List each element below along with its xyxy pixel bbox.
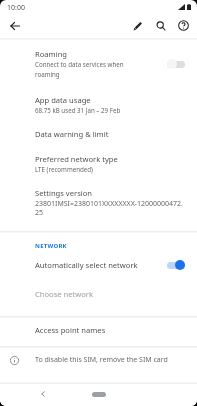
staticText: 23801IMSI=2380101XXXXXXXX-12000000472.25 xyxy=(35,199,185,217)
button[interactable]: Back xyxy=(35,386,51,402)
button[interactable]: Edit xyxy=(126,14,149,37)
staticText: Preferred network type xyxy=(35,154,118,164)
button[interactable]: Settings version xyxy=(0,180,197,225)
staticText: Data warning & limit xyxy=(35,129,109,139)
staticText: Automatically select network xyxy=(35,260,138,270)
staticText: To disable this SIM, remove the SIM card xyxy=(35,355,168,365)
staticText: 68.75 kB used 31 Jan – 29 Feb xyxy=(35,106,121,114)
button[interactable]: Home xyxy=(85,388,113,400)
staticText: Settings version xyxy=(35,188,93,198)
staticText: LTE (recommended) xyxy=(35,165,93,173)
staticText: Roaming xyxy=(35,49,67,59)
staticText: Choose network xyxy=(35,289,94,299)
button[interactable]: Data warning & limit xyxy=(0,121,197,147)
button[interactable]: Roaming xyxy=(0,41,197,87)
staticText: App data usage xyxy=(35,95,91,105)
button[interactable]: Help xyxy=(172,14,195,37)
button[interactable]: Access point names xyxy=(0,317,197,343)
button[interactable]: App data usage xyxy=(0,87,197,122)
button[interactable]: Search xyxy=(149,14,172,37)
button[interactable]: Choose network xyxy=(0,281,197,307)
staticText: 10:00 xyxy=(7,3,25,13)
staticText: Access point names xyxy=(35,325,106,335)
staticText: NETWORK xyxy=(35,242,67,250)
button[interactable]: Preferred network type xyxy=(0,146,197,181)
button[interactable]: Back xyxy=(5,16,24,35)
button[interactable]: Automatically select network xyxy=(0,252,197,278)
staticText: Connect to data services when roaming xyxy=(35,60,131,79)
